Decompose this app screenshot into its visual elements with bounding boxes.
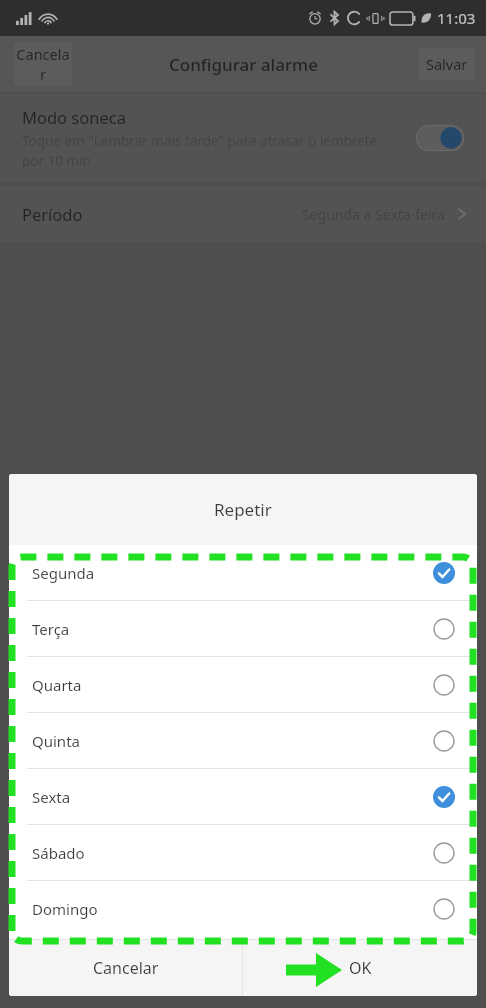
button[interactable]: Segunda: [9, 545, 477, 600]
staticText: Sábado: [32, 843, 85, 863]
button[interactable]: Domingo: [9, 881, 477, 936]
button[interactable]: Salvar: [419, 48, 475, 80]
staticText: Cancelar: [14, 44, 72, 84]
staticText: 11:03: [437, 8, 476, 28]
button[interactable]: Cancelar: [9, 940, 242, 996]
staticText: Toque em "Lembrar mais tarde" para atras…: [22, 132, 402, 170]
staticText: Cancelar: [93, 957, 159, 979]
button[interactable]: Sábado: [9, 825, 477, 880]
button[interactable]: Sexta: [9, 769, 477, 824]
button[interactable]: Cancelar: [14, 42, 72, 86]
staticText: Salvar: [426, 54, 468, 74]
staticText: Quarta: [32, 675, 82, 695]
button[interactable]: OK: [243, 940, 477, 996]
button[interactable]: Terça: [9, 601, 477, 656]
button[interactable]: Quarta: [9, 657, 477, 712]
staticText: Quinta: [32, 731, 80, 751]
staticText: Domingo: [32, 899, 98, 919]
staticText: Configurar alarme: [169, 53, 318, 76]
staticText: Sexta: [32, 787, 71, 807]
staticText: Terça: [32, 619, 70, 639]
button[interactable]: Período: [0, 186, 486, 242]
staticText: Segunda a Sexta-feira: [302, 205, 445, 224]
staticText: OK: [349, 957, 372, 979]
staticText: Segunda: [32, 563, 95, 583]
button[interactable]: Quinta: [9, 713, 477, 768]
button[interactable]: Modo soneca: [416, 125, 464, 151]
staticText: Modo soneca: [22, 106, 126, 128]
staticText: Repetir: [214, 498, 272, 521]
staticText: Período: [22, 203, 83, 225]
button[interactable]: Modo soneca: [0, 94, 486, 182]
